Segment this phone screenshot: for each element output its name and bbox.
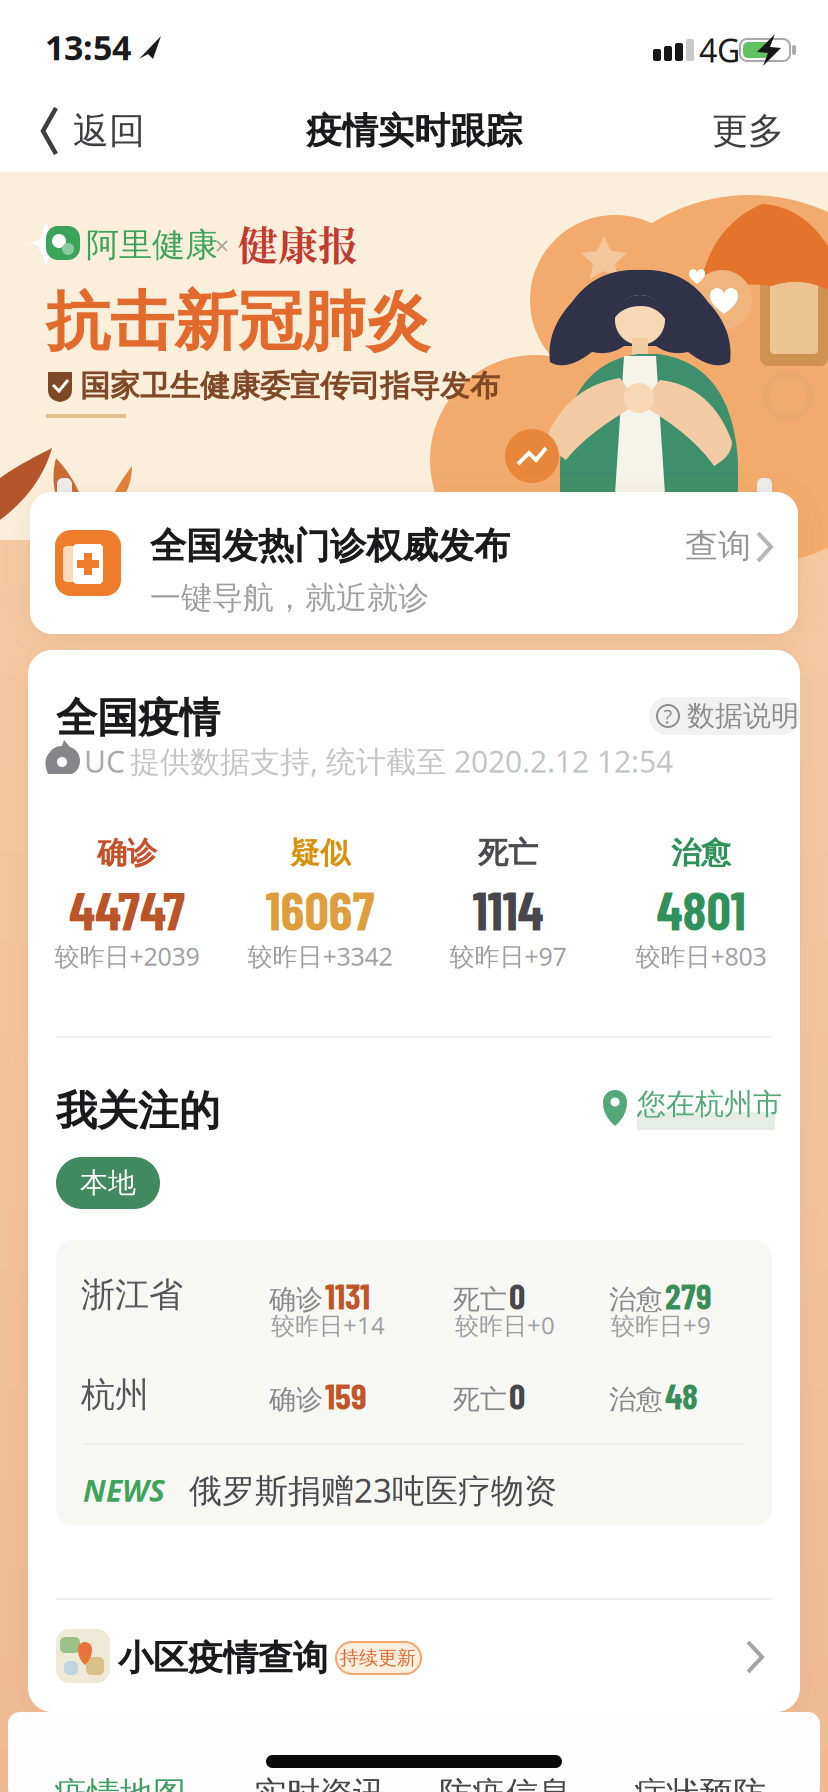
staticText: 返回 (73, 108, 145, 154)
staticText: 一键导航，就近就诊 (150, 578, 429, 618)
staticText: 抗击新冠肺炎 (46, 282, 430, 362)
staticText: 0 (509, 1373, 525, 1417)
staticText: 死亡 (478, 834, 538, 872)
staticText: 您在杭州市 (637, 1086, 782, 1122)
staticText: 48 (665, 1373, 698, 1417)
staticText: 提供数据支持, 统计截至 2020.2.12 12:54 (130, 741, 673, 781)
staticText: 13:54 (45, 24, 131, 70)
staticText: 确诊 (269, 1383, 323, 1417)
button[interactable]: 更多 (0, 0, 72, 60)
button[interactable]: 您在杭州市 (0, 0, 145, 60)
staticText: 本地 (80, 1165, 136, 1201)
button[interactable]: ? (0, 0, 151, 38)
staticText: 国家卫生健康委宣传司指导发布 (80, 367, 500, 405)
staticText: 4G (699, 28, 740, 72)
staticText: 持续更新 (340, 1646, 416, 1670)
staticText: 死亡 (453, 1283, 507, 1317)
staticText: 16067 (265, 877, 374, 941)
staticText: 查询 (685, 525, 751, 567)
staticText: 较昨日+97 (449, 939, 566, 973)
staticText: 较昨日+9 (611, 1309, 711, 1341)
staticText: 更多 (712, 108, 784, 154)
button[interactable]: 症状预防 (0, 0, 200, 60)
staticText: 健康报 (238, 214, 358, 272)
staticText: UC (84, 741, 125, 781)
staticText: 治愈 (609, 1283, 663, 1317)
staticText: 实时资讯 (254, 1773, 386, 1792)
staticText: NEWS (83, 1470, 165, 1510)
staticText: 防疫信息 (439, 1773, 571, 1792)
staticText: 较昨日+14 (271, 1309, 385, 1341)
staticText: 我关注的 (56, 1085, 220, 1137)
staticText: 4801 (656, 877, 745, 941)
staticText: 数据说明 (687, 698, 799, 734)
staticText: 疫情地图 (54, 1773, 186, 1792)
staticText: 阿里健康 (86, 224, 218, 266)
button[interactable]: 小区疫情查询 (0, 0, 716, 60)
staticText: 较昨日+803 (635, 939, 766, 973)
staticText: 小区疫情查询 (118, 1636, 328, 1680)
staticText: 治愈 (609, 1383, 663, 1417)
staticText: 俄罗斯捐赠23吨医疗物资 (189, 1467, 557, 1512)
staticText: 确诊 (97, 834, 157, 872)
staticText: 44747 (69, 877, 185, 941)
staticText: 1131 (325, 1273, 370, 1317)
staticText: 0 (509, 1273, 525, 1317)
staticText: 较昨日+3342 (247, 939, 392, 973)
button[interactable]: 实时资讯 (0, 0, 200, 60)
staticText: 浙江省 (81, 1274, 183, 1316)
staticText: ? (663, 702, 672, 730)
staticText: 较昨日+0 (455, 1309, 555, 1341)
button[interactable]: 返回 (0, 0, 105, 54)
button[interactable]: 全国发热门诊权威发布 (0, 0, 768, 142)
staticText: 疫情实时跟踪 (306, 108, 522, 154)
staticText: 159 (325, 1373, 367, 1417)
button[interactable]: 本地 (0, 0, 104, 52)
staticText: 确诊 (269, 1283, 323, 1317)
staticText: × (214, 227, 229, 263)
staticText: 死亡 (453, 1383, 507, 1417)
staticText: 症状预防 (634, 1773, 766, 1792)
button[interactable]: 疫情地图 (0, 0, 200, 60)
staticText: 较昨日+2039 (54, 939, 199, 973)
staticText: 279 (665, 1273, 712, 1317)
staticText: 治愈 (671, 834, 731, 872)
staticText: 杭州 (81, 1374, 149, 1416)
staticText: 疑似 (290, 834, 350, 872)
staticText: 1114 (472, 877, 543, 941)
staticText: 全国发热门诊权威发布 (150, 523, 510, 569)
staticText: 全国疫情 (56, 692, 220, 744)
button[interactable]: 防疫信息 (0, 0, 200, 60)
